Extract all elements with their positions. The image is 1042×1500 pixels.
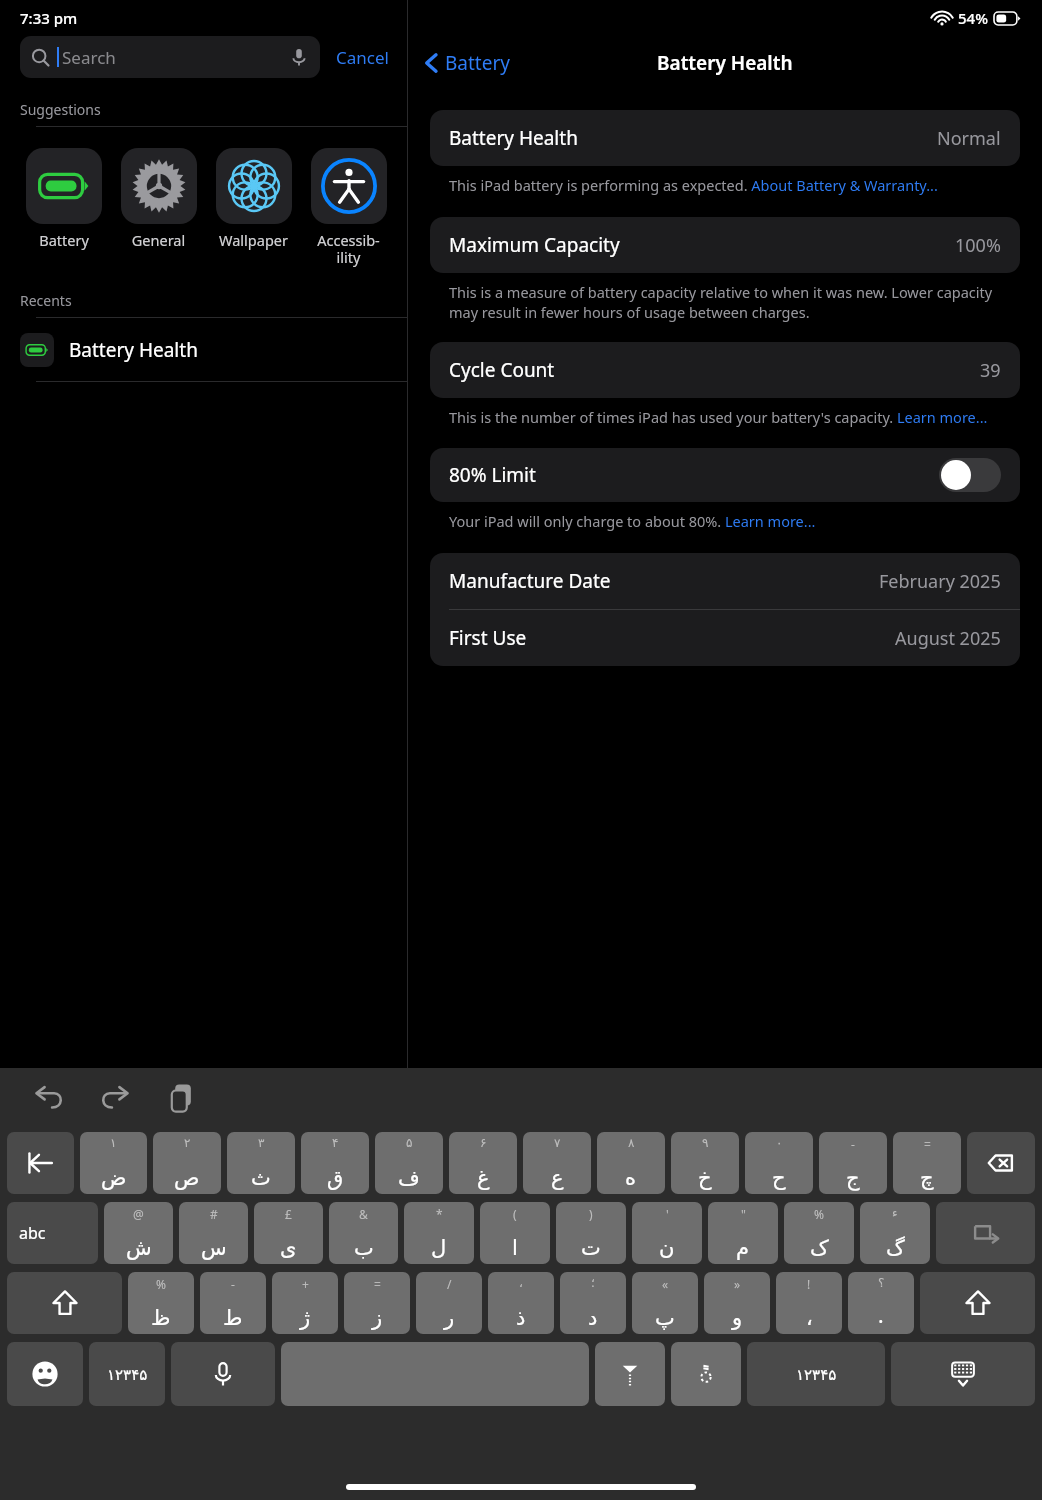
other: Dictation (289, 47, 309, 67)
button[interactable]: Battery Health (0, 318, 407, 381)
staticText: Wallpaper (211, 230, 296, 250)
staticText: » (734, 1276, 741, 1292)
button[interactable]: / (416, 1272, 482, 1334)
staticText: = (924, 1136, 931, 1152)
button[interactable]: 80% Limit toggle (939, 458, 1001, 492)
staticText: General (116, 230, 201, 250)
staticText: Battery Health (449, 125, 578, 151)
button[interactable]: ۰ (745, 1132, 813, 1194)
button[interactable]: % (784, 1202, 854, 1264)
staticText: ض (101, 1166, 127, 1190)
button[interactable]: ، (488, 1272, 554, 1334)
button[interactable]: ' (632, 1202, 702, 1264)
button[interactable]: abc (7, 1202, 98, 1264)
staticText: ۰ (776, 1136, 783, 1150)
button[interactable]: ۵ (375, 1132, 443, 1194)
button[interactable]: shift (7, 1272, 122, 1334)
button[interactable]: + (272, 1272, 338, 1334)
button[interactable]: Search (20, 36, 320, 78)
staticText: Battery Health (657, 50, 793, 76)
button[interactable]: redo (99, 1081, 133, 1115)
button[interactable]: Numbers (89, 1342, 165, 1406)
button[interactable]: Battery Health (430, 110, 1020, 166)
button[interactable]: " (708, 1202, 778, 1264)
staticText: ( (513, 1206, 517, 1222)
button[interactable]: = (344, 1272, 410, 1334)
button[interactable]: ret (936, 1202, 1035, 1264)
staticText: ؟ (878, 1276, 885, 1290)
staticText: ع (551, 1166, 564, 1190)
staticText: Maximum Capacity (449, 232, 620, 258)
button[interactable]: Battery (22, 148, 106, 250)
staticText: ذ (516, 1306, 526, 1330)
button[interactable]: % (128, 1272, 194, 1334)
button[interactable]: £ (254, 1202, 323, 1264)
button[interactable]: & (329, 1202, 398, 1264)
button[interactable]: Accessib- ility (306, 148, 391, 267)
button[interactable]: General (116, 148, 201, 250)
button[interactable]: ۹ (671, 1132, 739, 1194)
button[interactable]: ) (556, 1202, 626, 1264)
button[interactable]: tab (7, 1132, 74, 1194)
button[interactable]: - (819, 1132, 887, 1194)
button[interactable]: ؛ (560, 1272, 626, 1334)
button[interactable]: First Use (430, 610, 1020, 666)
staticText: Battery (445, 50, 510, 76)
staticText: £ (285, 1206, 292, 1222)
button[interactable]: ۷ (523, 1132, 591, 1194)
button[interactable]: Cycle Count (430, 342, 1020, 398)
button[interactable]: Numbers (747, 1342, 885, 1406)
button[interactable]: ۲ (153, 1132, 221, 1194)
button[interactable]: ( (480, 1202, 550, 1264)
staticText: غ (477, 1166, 490, 1190)
button[interactable]: del (967, 1132, 1035, 1194)
button[interactable]: ؟ (848, 1272, 914, 1334)
staticText: ی (280, 1236, 297, 1260)
button[interactable]: Battery (408, 44, 518, 82)
staticText: February 2025 (879, 569, 1001, 594)
button[interactable]: Half space (595, 1342, 665, 1406)
button[interactable]: » (704, 1272, 770, 1334)
staticText: ژ (300, 1306, 311, 1330)
staticText: This iPad battery is performing as expec… (449, 175, 1010, 195)
staticText: ج (846, 1166, 860, 1190)
button[interactable]: @ (104, 1202, 173, 1264)
button[interactable]: ء (860, 1202, 930, 1264)
button[interactable]: ۴ (301, 1132, 369, 1194)
staticText: ک (810, 1236, 829, 1260)
staticText: خ (698, 1166, 712, 1190)
button[interactable]: Dictation (171, 1342, 275, 1406)
button[interactable]: « (632, 1272, 698, 1334)
button[interactable]: Emoji (7, 1342, 83, 1406)
staticText: ف (398, 1166, 420, 1190)
button[interactable]: ۱ (80, 1132, 147, 1194)
staticText: 80% Limit (449, 462, 536, 488)
button[interactable]: Wallpaper (211, 148, 296, 250)
button[interactable]: # (179, 1202, 248, 1264)
button[interactable]: ۸ (597, 1132, 665, 1194)
button[interactable]: Hide keyboard (891, 1342, 1035, 1406)
button[interactable]: ۶ (449, 1132, 517, 1194)
staticText: & (359, 1206, 368, 1222)
button[interactable]: - (200, 1272, 266, 1334)
button[interactable]: Diacritic (671, 1342, 741, 1406)
button[interactable]: Cancel (334, 40, 391, 75)
staticText: ۳ (258, 1136, 265, 1150)
button[interactable]: ! (776, 1272, 842, 1334)
staticText: @ (133, 1206, 144, 1222)
button[interactable]: shift (920, 1272, 1035, 1334)
staticText: abc (19, 1222, 46, 1244)
staticText: پ (655, 1306, 675, 1330)
button[interactable]: 80% Limit (430, 448, 1020, 502)
button[interactable]: Maximum Capacity (430, 217, 1020, 273)
button[interactable]: * (404, 1202, 474, 1264)
button[interactable]: = (893, 1132, 961, 1194)
staticText: ظ (151, 1306, 171, 1330)
staticText: ث (251, 1166, 271, 1190)
staticText: August 2025 (895, 626, 1001, 651)
button[interactable]: paste (165, 1081, 199, 1115)
button[interactable]: undo (31, 1081, 65, 1115)
button[interactable]: ۳ (227, 1132, 295, 1194)
button[interactable]: Manufacture Date (430, 553, 1020, 609)
